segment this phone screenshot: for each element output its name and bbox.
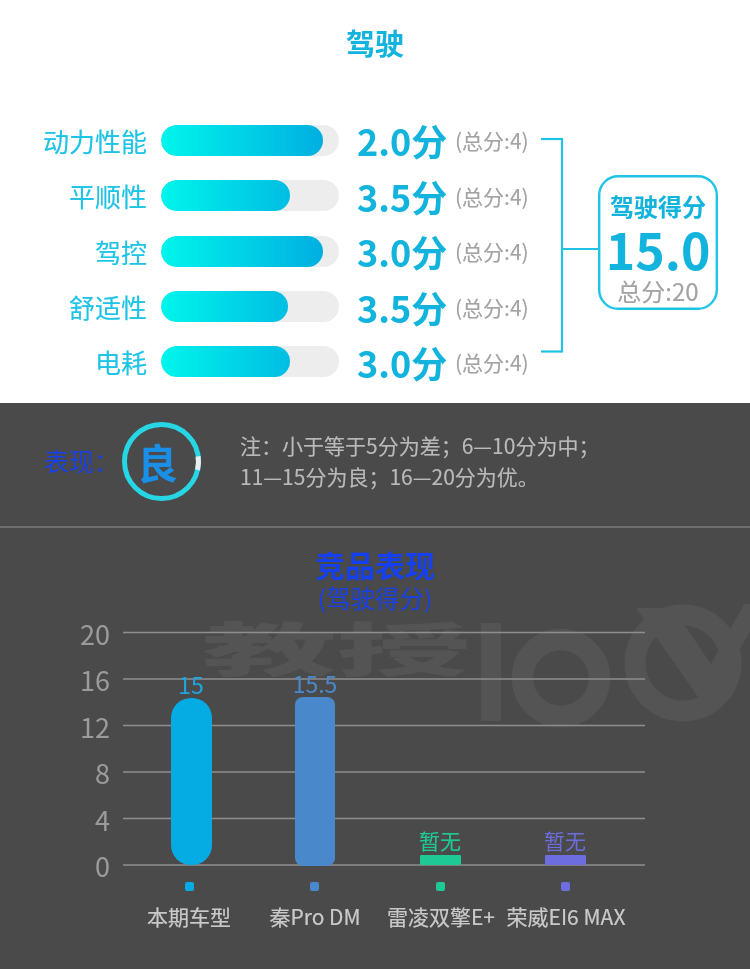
staticText: (驾驶得分)	[0, 580, 750, 615]
button[interactable]: 本期车型	[109, 901, 269, 931]
button[interactable]	[161, 291, 339, 322]
staticText: 舒适性	[0, 288, 147, 326]
button[interactable]	[161, 125, 339, 156]
staticText: 3.0分	[357, 336, 448, 388]
button[interactable]	[161, 236, 339, 267]
button[interactable]	[161, 180, 339, 211]
button[interactable]: 雷凌双擎E+	[361, 901, 521, 931]
staticText: 12	[64, 707, 110, 746]
staticText: (总分:4)	[455, 292, 529, 322]
button[interactable]	[295, 697, 335, 866]
staticText: 3.5分	[357, 170, 448, 222]
staticText: 总分:20	[598, 273, 718, 308]
staticText: 11—15分为良；16—20分为优。	[240, 461, 539, 491]
staticText: 16	[64, 660, 110, 699]
staticText: 15.5	[265, 666, 365, 699]
button[interactable]: 荣威EI6 MAX	[486, 901, 646, 931]
staticText: (总分:4)	[455, 125, 529, 155]
staticText: 驾控	[0, 233, 147, 271]
staticText: 4	[64, 800, 110, 839]
staticText: 表现：	[44, 442, 120, 478]
staticText: 2.0分	[357, 114, 448, 166]
staticText: 15	[141, 667, 241, 700]
staticText: 20	[64, 614, 110, 653]
button[interactable]: 驾驶得分	[598, 175, 718, 310]
staticText: 教授	[202, 604, 473, 688]
staticText: 15.0	[598, 212, 718, 284]
staticText: 3.5分	[357, 281, 448, 333]
button[interactable]	[545, 855, 586, 865]
staticText: 8	[64, 753, 110, 792]
staticText: 平顺性	[0, 177, 147, 215]
button[interactable]	[161, 346, 339, 377]
staticText: 电耗	[0, 343, 147, 381]
staticText: (总分:4)	[455, 347, 529, 377]
staticText: 0	[64, 846, 110, 885]
staticText: 驾驶	[0, 21, 750, 63]
staticText: 驾驶得分	[598, 188, 718, 223]
staticText: 3.0分	[357, 225, 448, 277]
staticText: 注：小于等于5分为差；6—10分为中；	[240, 430, 600, 460]
staticText: (总分:4)	[455, 181, 529, 211]
staticText: 暂无	[520, 825, 610, 855]
staticText: (总分:4)	[455, 236, 529, 266]
button[interactable]: 秦Pro DM	[235, 901, 395, 931]
staticText: 良	[137, 431, 178, 490]
button[interactable]: 评级 良	[122, 422, 201, 501]
staticText: 暂无	[395, 825, 485, 855]
staticText: 动力性能	[0, 122, 147, 160]
staticText: 竞品表现	[0, 542, 750, 585]
button[interactable]	[171, 698, 212, 865]
